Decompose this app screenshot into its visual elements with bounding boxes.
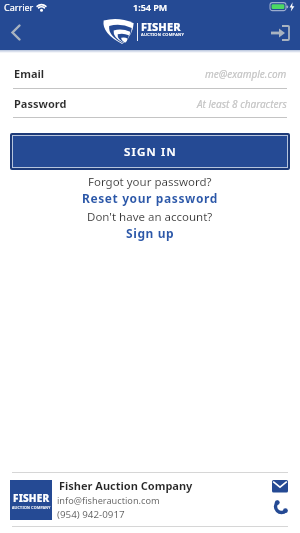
staticText: FISHER: [13, 491, 50, 505]
staticText: 1:54 PM: [133, 1, 168, 13]
staticText: (954) 942-0917: [57, 508, 125, 521]
staticText: FISHER: [141, 19, 181, 34]
staticText: Password: [14, 96, 67, 111]
staticText: SIGN IN: [124, 144, 177, 160]
staticText: Email: [14, 66, 45, 81]
staticText: Reset your password: [82, 190, 218, 206]
staticText: Fisher Auction Company: [59, 478, 193, 493]
staticText: info@fisherauction.com: [57, 494, 160, 507]
staticText: Carrier: [4, 1, 34, 13]
staticText: AUCTION COMPANY: [12, 505, 51, 510]
staticText: AUCTION COMPANY: [141, 32, 185, 37]
staticText: Forgot your password?: [88, 174, 212, 190]
staticText: Don't have an account?: [87, 209, 213, 225]
staticText: me@example.com: [205, 67, 287, 81]
staticText: Sign up: [126, 225, 175, 241]
staticText: At least 8 characters: [197, 97, 287, 111]
